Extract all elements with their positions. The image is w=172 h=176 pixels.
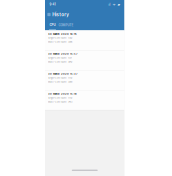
staticText: Multi-Core Score: 3413 xyxy=(48,100,72,103)
button[interactable]: 30 March 2020 16:15 xyxy=(45,30,124,50)
button[interactable]: 30 March 2020 15:57 xyxy=(45,50,124,70)
staticText: Single-Core Score: 1192 xyxy=(48,76,72,79)
button[interactable]: CPU xyxy=(47,20,58,30)
staticText: Single-Core Score: 1192 xyxy=(48,96,72,99)
staticText: 30 March 2020 16:15 xyxy=(48,32,77,36)
staticText: Multi-Core Score: 3642 xyxy=(48,61,72,63)
staticText: 9:41 xyxy=(49,3,55,6)
staticText: COMPUTE xyxy=(58,23,73,27)
staticText: CPU xyxy=(49,23,55,27)
staticText: Multi-Core Score: 3396 xyxy=(48,41,72,43)
staticText: 30 March 2020 15:57 xyxy=(48,52,77,55)
staticText: ıl ᯤ ▰ xyxy=(108,2,120,7)
staticText: Multi-Core Score: 3390 xyxy=(48,80,72,83)
staticText: 30 March 2020 15:18 xyxy=(48,92,77,95)
staticText: History xyxy=(52,12,69,17)
staticText: Single-Core Score: 1071 xyxy=(48,57,72,59)
staticText: 30 March 2020 15:37 xyxy=(48,72,77,75)
button[interactable]: 30 March 2020 15:18 xyxy=(45,90,124,110)
staticText: Single-Core Score: 1302 xyxy=(48,37,72,39)
button[interactable]: COMPUTE xyxy=(58,20,74,30)
button[interactable]: 30 March 2020 15:37 xyxy=(45,70,124,90)
